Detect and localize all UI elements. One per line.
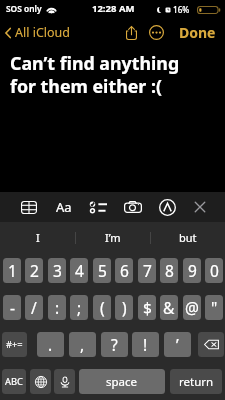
button[interactable]: 0 (205, 258, 223, 283)
staticText: / (31, 297, 37, 318)
button[interactable]: All iCloud (4, 24, 71, 41)
staticText: 4 (75, 260, 84, 281)
button[interactable]: Share (122, 23, 141, 42)
button[interactable]: Close (187, 194, 213, 220)
staticText: 7 (143, 260, 152, 281)
staticText: 3 (53, 260, 62, 281)
button[interactable]: : (48, 295, 66, 320)
button[interactable]: Switch keyboard (30, 369, 51, 394)
staticText: #+= (6, 338, 23, 351)
button[interactable]: 8 (160, 258, 178, 283)
button[interactable]: I’m (76, 222, 150, 253)
staticText: " (211, 297, 218, 318)
staticText: . (48, 334, 53, 355)
button[interactable]: $ (138, 295, 156, 320)
button[interactable]: ? (101, 332, 128, 357)
staticText: 9 (188, 260, 197, 281)
button[interactable]: Aa (51, 194, 77, 220)
button[interactable]: ) (115, 295, 133, 320)
button[interactable]: 9 (183, 258, 201, 283)
staticText: ’ (176, 334, 179, 355)
staticText: I’m (105, 230, 121, 245)
button[interactable]: 3 (48, 258, 66, 283)
staticText: 8 (165, 260, 174, 281)
staticText: return (179, 374, 214, 390)
staticText: I (36, 230, 40, 245)
staticText: Done (179, 23, 216, 42)
staticText: 6 (120, 260, 129, 281)
staticText: SOS only (6, 3, 42, 14)
button[interactable]: , (69, 332, 96, 357)
staticText: ) (122, 297, 127, 318)
staticText: ; (77, 297, 82, 318)
staticText: 2 (30, 260, 39, 281)
staticText: , (80, 334, 85, 355)
button[interactable]: ! (132, 332, 159, 357)
button[interactable]: Backspace (198, 332, 224, 357)
button[interactable]: & (160, 295, 178, 320)
staticText: ? (111, 334, 118, 355)
button[interactable]: 5 (93, 258, 111, 283)
staticText: & (163, 297, 175, 318)
button[interactable]: Markup (154, 194, 180, 220)
button[interactable]: ABC (2, 369, 26, 394)
button[interactable]: ’ (164, 332, 191, 357)
staticText: : (55, 297, 60, 318)
button[interactable]: . (37, 332, 64, 357)
staticText: ! (143, 334, 148, 355)
staticText: but (179, 230, 197, 245)
staticText: All iCloud (15, 24, 71, 41)
staticText: Can’t find anything for them either :( (10, 51, 180, 98)
button[interactable]: / (25, 295, 43, 320)
staticText: ABC (5, 375, 23, 388)
staticText: 12:28 AM (92, 2, 135, 15)
button[interactable]: @ (183, 295, 201, 320)
button[interactable]: 2 (25, 258, 43, 283)
staticText: 1 (8, 260, 17, 281)
button[interactable]: return (170, 369, 222, 394)
button[interactable]: but (151, 222, 225, 253)
button[interactable]: 6 (115, 258, 133, 283)
staticText: 16% (173, 4, 190, 15)
button[interactable]: 4 (70, 258, 88, 283)
button[interactable]: ; (70, 295, 88, 320)
staticText: 0 (210, 260, 219, 281)
staticText: 5 (98, 260, 107, 281)
button[interactable]: Table (16, 194, 42, 220)
button[interactable]: Done (177, 20, 218, 45)
staticText: Aa (56, 198, 72, 216)
staticText: @ (185, 297, 199, 318)
button[interactable]: 1 (3, 258, 21, 283)
button[interactable]: 7 (138, 258, 156, 283)
button[interactable]: Dictate (54, 369, 75, 394)
button[interactable]: - (3, 295, 21, 320)
button[interactable]: " (205, 295, 223, 320)
button[interactable]: space (79, 369, 165, 394)
button[interactable]: More options (147, 23, 166, 42)
button[interactable]: Camera (120, 194, 146, 220)
staticText: $ (143, 297, 152, 318)
staticText: - (10, 297, 15, 318)
button[interactable]: #+= (2, 332, 27, 357)
staticText: ( (100, 297, 105, 318)
staticText: space (106, 374, 138, 390)
button[interactable]: ( (93, 295, 111, 320)
button[interactable]: I (0, 222, 75, 253)
button[interactable]: Checklist (85, 194, 111, 220)
